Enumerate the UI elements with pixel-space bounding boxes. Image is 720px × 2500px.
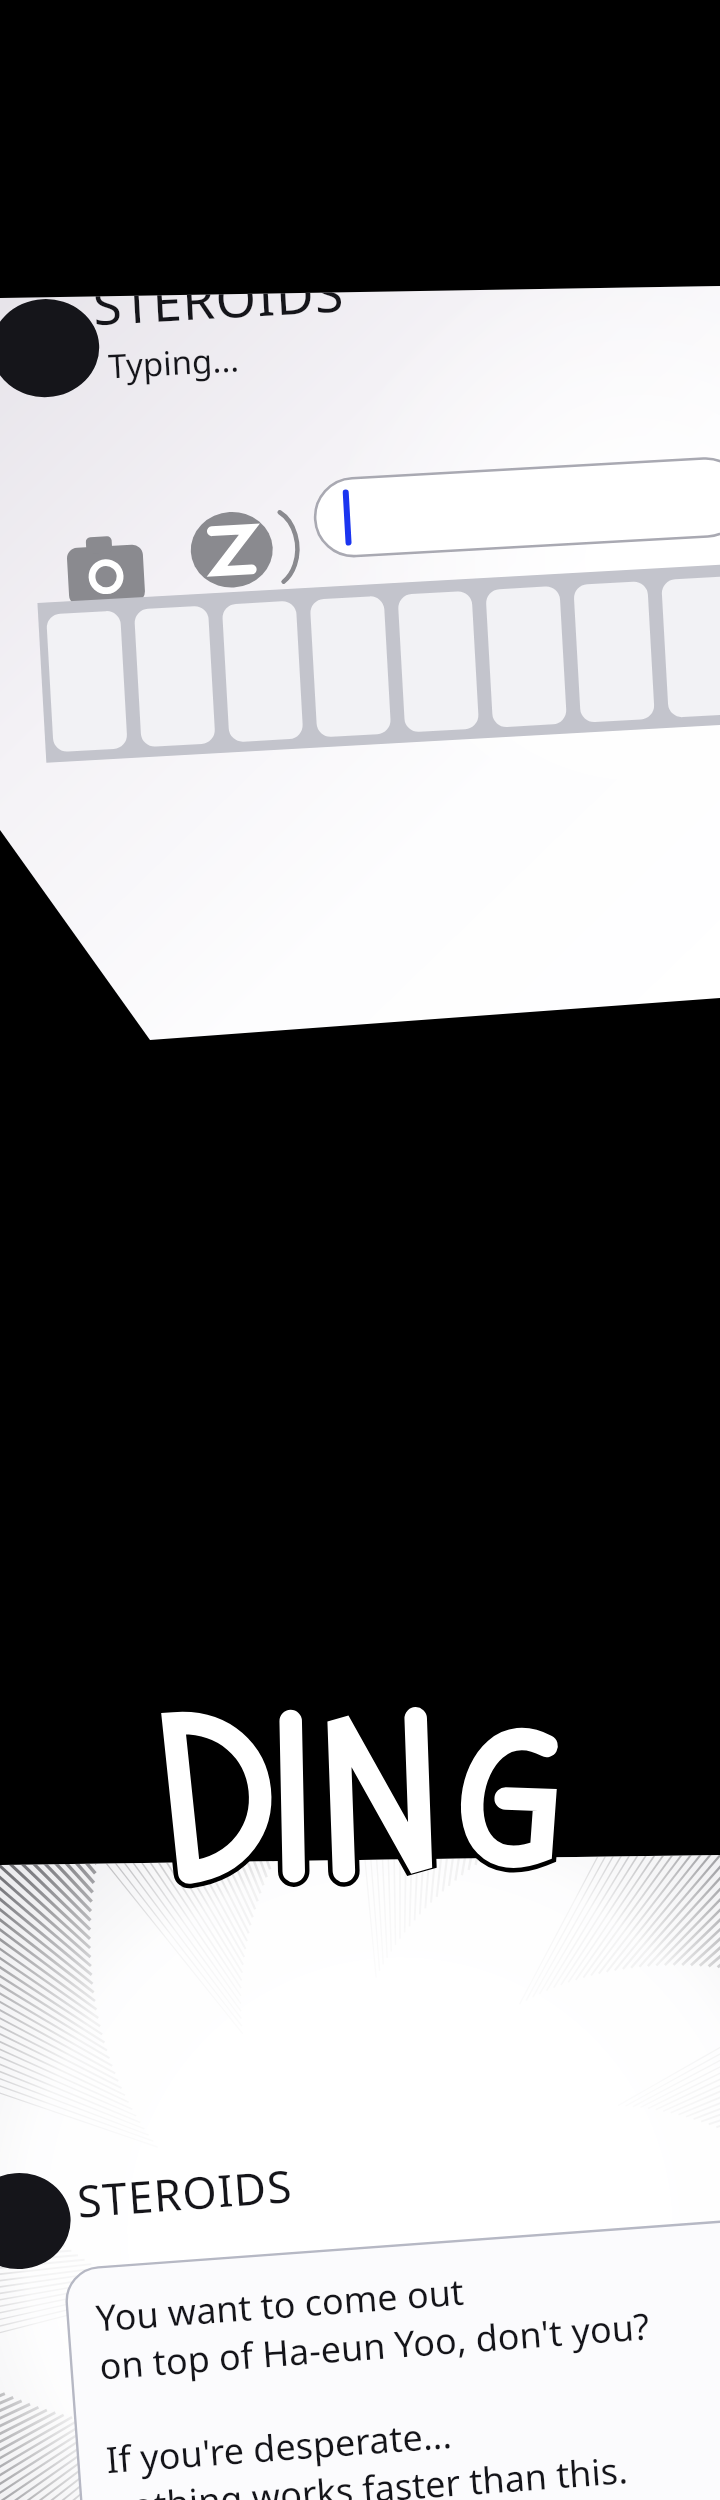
button[interactable]: Comic episode panels — [0, 0, 720, 2500]
